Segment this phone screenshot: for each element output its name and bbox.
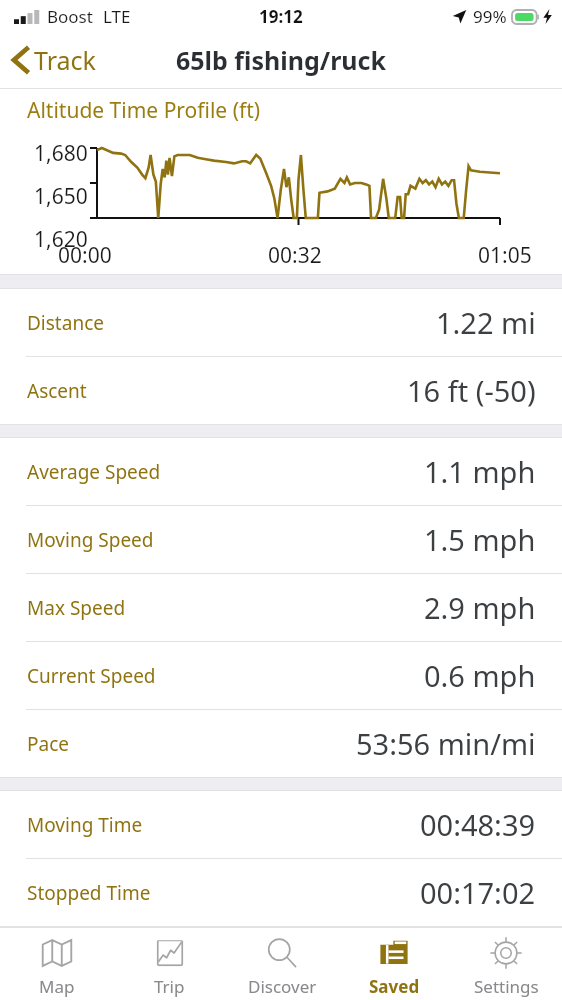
staticText: Map	[39, 975, 75, 998]
staticText: 01:05	[478, 241, 532, 270]
button[interactable]: Distance	[0, 289, 562, 356]
staticText: 53:56 min/mi	[356, 724, 536, 763]
staticText: Ascent	[27, 378, 87, 404]
button[interactable]: Moving Time	[0, 791, 562, 858]
button[interactable]: Pace	[0, 710, 562, 777]
staticText: 19:12	[259, 5, 303, 28]
staticText: 00:32	[268, 241, 322, 270]
staticText: 2.9 mph	[424, 588, 536, 627]
staticText: 1,680	[34, 139, 88, 168]
staticText: Moving Time	[27, 812, 143, 838]
staticText: Max Speed	[27, 595, 126, 621]
staticText: Trip	[154, 975, 185, 998]
staticText: Stopped Time	[27, 880, 151, 906]
staticText: 00:17:02	[420, 873, 536, 912]
button[interactable]: Trip	[113, 928, 226, 998]
staticText: 1,650	[34, 182, 88, 211]
button[interactable]: Saved	[338, 928, 450, 998]
button[interactable]: Average Speed	[0, 438, 562, 505]
staticText: 1.22 mi	[436, 303, 536, 342]
button[interactable]: Stopped Time	[0, 859, 562, 926]
staticText: 0.6 mph	[424, 656, 536, 695]
button[interactable]: Settings	[450, 928, 562, 998]
button[interactable]: Discover	[226, 928, 338, 998]
staticText: Altitude Time Profile (ft)	[27, 96, 261, 125]
staticText: Moving Speed	[27, 527, 154, 553]
staticText: 1.1 mph	[424, 452, 536, 491]
button[interactable]: Track	[0, 37, 108, 83]
staticText: Pace	[27, 731, 69, 757]
staticText: 1,620	[34, 225, 88, 254]
staticText: Boost	[47, 5, 93, 28]
staticText: Track	[34, 43, 96, 77]
button[interactable]: Map	[0, 928, 113, 998]
staticText: Distance	[27, 310, 104, 336]
staticText: 16 ft (-50)	[407, 371, 536, 410]
button[interactable]: Moving Speed	[0, 506, 562, 573]
staticText: Average Speed	[27, 459, 161, 485]
button[interactable]: Ascent	[0, 357, 562, 424]
staticText: 1.5 mph	[424, 520, 536, 559]
button[interactable]: Max Speed	[0, 574, 562, 641]
staticText: 00:48:39	[420, 805, 536, 844]
staticText: Saved	[369, 975, 420, 998]
staticText: Current Speed	[27, 663, 156, 689]
staticText: 00:00	[58, 241, 112, 270]
staticText: LTE	[103, 5, 131, 28]
button[interactable]: Current Speed	[0, 642, 562, 709]
staticText: 99%	[473, 5, 507, 28]
staticText: Settings	[474, 975, 539, 998]
staticText: Discover	[248, 975, 317, 998]
staticText: 65lb fishing/ruck	[176, 43, 387, 77]
